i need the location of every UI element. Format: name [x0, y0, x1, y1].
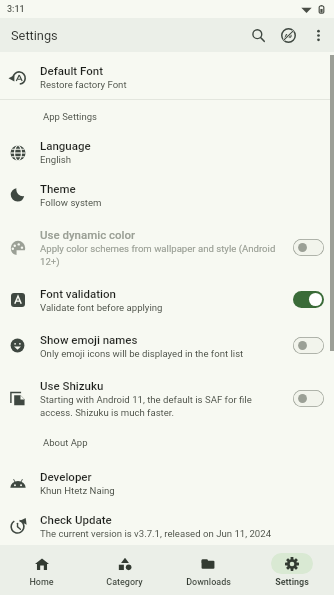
button[interactable]: Downloads: [166, 545, 250, 595]
button[interactable]: Font validation: [0, 278, 334, 321]
staticText: Settings: [275, 577, 309, 588]
button[interactable]: [293, 239, 324, 256]
button[interactable]: Language: [0, 132, 334, 172]
button[interactable]: Use dynamic color: [0, 217, 334, 278]
staticText: Validate font before applying: [40, 302, 163, 313]
staticText: Only emoji icons will be displayed in th…: [40, 348, 244, 359]
staticText: Language: [40, 139, 91, 152]
staticText: Use Shizuku: [40, 379, 104, 392]
staticText: Follow system: [40, 197, 102, 208]
button[interactable]: Theme: [0, 172, 334, 217]
button[interactable]: Search: [244, 21, 273, 50]
staticText: Font validation: [40, 287, 117, 300]
button[interactable]: Use Shizuku: [0, 370, 334, 426]
staticText: Developer: [40, 470, 92, 483]
staticText: Apply color schemes from wallpaper and s…: [40, 243, 283, 267]
staticText: Theme: [40, 182, 76, 195]
staticText: Downloads: [186, 577, 231, 588]
staticText: Category: [106, 577, 143, 588]
button[interactable]: Remove ads: [274, 21, 303, 50]
staticText: Khun Htetz Naing: [40, 485, 115, 496]
staticText: Starting with Android 11, the default is…: [40, 394, 280, 418]
staticText: 3:11: [7, 4, 25, 15]
staticText: Settings: [11, 28, 58, 43]
button[interactable]: Check Update: [0, 506, 334, 545]
button[interactable]: More options: [304, 21, 333, 50]
button[interactable]: [293, 291, 324, 308]
button[interactable]: Category: [83, 545, 166, 595]
button[interactable]: Settings: [250, 545, 334, 595]
staticText: About App: [43, 437, 88, 448]
button[interactable]: [293, 390, 324, 407]
button[interactable]: Home: [0, 545, 83, 595]
staticText: Home: [29, 577, 54, 588]
button[interactable]: Developer: [0, 459, 334, 506]
staticText: Default Font: [40, 64, 103, 77]
staticText: Show emoji names: [40, 333, 138, 346]
button[interactable]: Default Font: [0, 55, 334, 99]
staticText: Check Update: [40, 513, 112, 526]
staticText: English: [40, 154, 72, 165]
button[interactable]: [293, 337, 324, 354]
staticText: App Settings: [43, 111, 97, 122]
staticText: Restore factory Font: [40, 79, 127, 90]
staticText: The current version is v3.7.1, released …: [40, 528, 272, 539]
staticText: Use dynamic color: [40, 228, 136, 241]
button[interactable]: Show emoji names: [0, 321, 334, 370]
